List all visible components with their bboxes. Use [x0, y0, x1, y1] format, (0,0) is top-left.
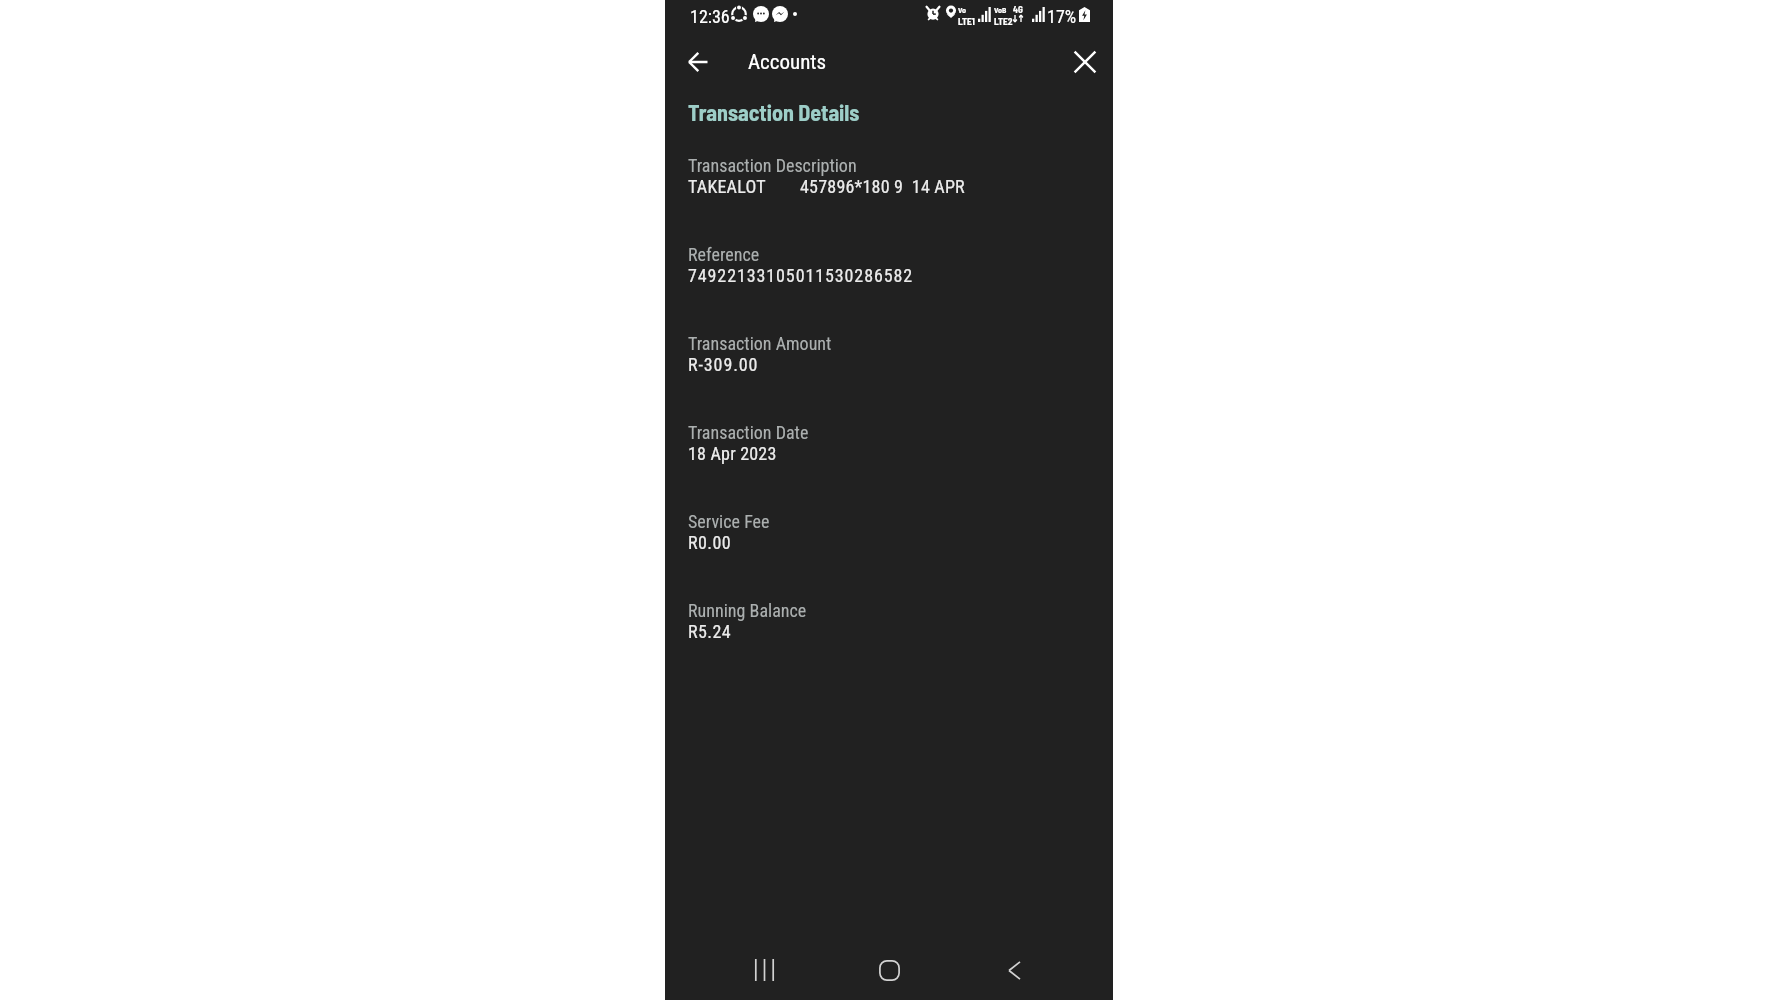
staticText: Reference	[688, 244, 760, 265]
staticText: 18 Apr 2023	[688, 443, 777, 464]
staticText: R-309.00	[688, 354, 759, 375]
staticText: 74922133105011530286582	[688, 265, 914, 286]
staticText: Transaction Date	[688, 422, 809, 443]
staticText: Vo	[958, 5, 967, 15]
staticText: Transaction Description	[688, 155, 857, 176]
staticText: Transaction Amount	[688, 333, 832, 354]
button[interactable]: Close	[1062, 39, 1108, 85]
staticText: Service Fee	[688, 511, 770, 532]
staticText: 12:36	[690, 6, 730, 27]
button[interactable]: Recent apps	[738, 944, 790, 996]
staticText: R5.24	[688, 621, 731, 642]
button[interactable]: Back	[675, 39, 721, 85]
staticText: 4G	[1013, 4, 1023, 15]
staticText: TAKEALOT 457896*180 9 14 APR	[688, 176, 965, 197]
staticText: LTE1	[958, 15, 975, 26]
staticText: 17%	[1047, 6, 1077, 27]
staticText: Transaction Details	[688, 99, 860, 125]
button[interactable]: Back	[988, 944, 1040, 996]
staticText: LTE2	[994, 15, 1013, 26]
button[interactable]: Home	[863, 944, 915, 996]
staticText: Running Balance	[688, 600, 807, 621]
staticText: VoB	[994, 5, 1007, 15]
staticText: R0.00	[688, 532, 731, 553]
staticText: Accounts	[748, 50, 827, 75]
